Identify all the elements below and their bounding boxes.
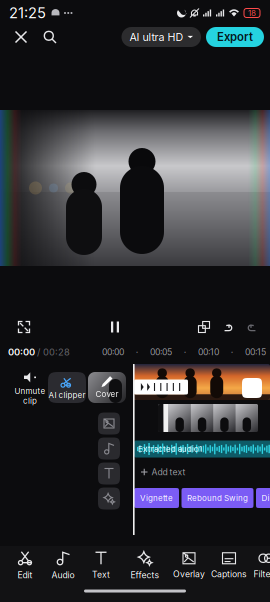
button[interactable]: Add clip	[242, 378, 262, 398]
staticText: 00:05	[150, 347, 172, 357]
staticText: 00:15	[245, 347, 266, 357]
staticText: 00:00	[102, 347, 124, 357]
staticText: Unmute	[14, 386, 45, 396]
staticText: Edit	[17, 570, 32, 580]
button[interactable]: Overlay	[168, 552, 210, 580]
button[interactable]: Vignette	[134, 488, 179, 508]
button[interactable]: Add text	[98, 462, 120, 484]
button[interactable]: AI ultra HD	[121, 27, 201, 47]
button[interactable]: Text	[80, 552, 122, 580]
staticText: ·	[230, 345, 233, 358]
staticText: Text	[92, 569, 110, 580]
button[interactable]: AI clipper	[48, 372, 86, 403]
staticText: Vignette	[140, 493, 173, 503]
staticText: Extracted audio1	[138, 444, 202, 454]
staticText: 00:00	[8, 346, 35, 358]
button[interactable]: Add effect	[98, 487, 120, 509]
button[interactable]: Export	[206, 27, 264, 47]
staticText: Rebound Swing	[187, 493, 248, 503]
staticText: ·	[183, 345, 186, 358]
button[interactable]: Redo	[240, 315, 264, 339]
button[interactable]: Unmute	[14, 372, 46, 406]
button[interactable]: Undo	[216, 315, 240, 339]
staticText: 18	[248, 8, 256, 18]
button[interactable]: Full screen	[10, 315, 38, 339]
staticText: clip	[23, 396, 37, 406]
button[interactable]: Search	[36, 23, 64, 51]
staticText: Filters	[253, 569, 270, 579]
button[interactable]: Pause	[101, 315, 129, 339]
staticText: 00:10	[198, 347, 219, 357]
staticText: Export	[217, 30, 253, 44]
button[interactable]: Keyframe	[192, 315, 216, 339]
staticText: AI clipper	[48, 390, 85, 400]
staticText: 21:25	[9, 4, 46, 22]
staticText: Effects	[130, 570, 159, 580]
staticText: Captions	[211, 569, 247, 579]
staticText: Add text	[151, 467, 185, 477]
button[interactable]: Digita	[256, 488, 270, 508]
staticText: Digita	[261, 493, 270, 503]
button[interactable]: Close	[6, 23, 36, 51]
button[interactable]: Captions	[208, 552, 250, 580]
staticText: Cover	[95, 389, 118, 399]
button[interactable]: Audio	[42, 552, 84, 580]
button[interactable]: Edit	[4, 552, 46, 580]
button[interactable]: Cover	[88, 372, 126, 403]
button[interactable]: Extracted audio1	[134, 440, 270, 457]
staticText: / 00:28	[37, 346, 70, 358]
button[interactable]: Add overlay	[98, 412, 120, 434]
staticText: Audio	[51, 570, 74, 580]
button[interactable]: Filters	[245, 552, 270, 580]
staticText: AI ultra HD	[129, 30, 183, 43]
button[interactable]: Add text	[134, 464, 270, 480]
button[interactable]: Add audio	[98, 437, 120, 459]
button[interactable]: Rebound Swing	[181, 488, 253, 508]
staticText: Overlay	[173, 569, 205, 579]
staticText: ·	[135, 345, 138, 358]
button[interactable]: Effects	[124, 552, 166, 580]
